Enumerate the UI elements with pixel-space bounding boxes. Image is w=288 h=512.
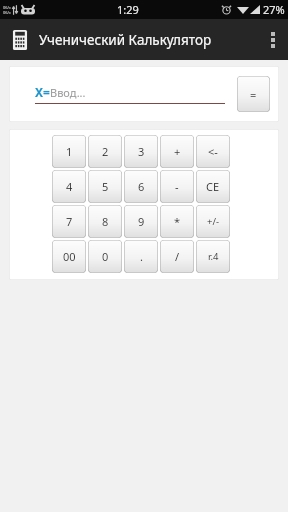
staticText: <- (208, 144, 218, 159)
staticText: - (175, 179, 179, 194)
staticText: 4 (66, 179, 73, 194)
button[interactable]: r.4 (196, 240, 230, 273)
button[interactable]: <- (196, 135, 230, 168)
staticText: / (175, 249, 180, 264)
button[interactable]: +/- (196, 205, 230, 238)
button[interactable]: More options (258, 19, 288, 60)
staticText: X= (35, 84, 50, 100)
button[interactable]: 9 (124, 205, 158, 238)
button[interactable]: 6 (124, 170, 158, 203)
staticText: CE (206, 179, 220, 194)
staticText: = (250, 87, 257, 102)
button[interactable]: CE (196, 170, 230, 203)
button[interactable]: 0 (88, 240, 122, 273)
staticText: . (140, 249, 143, 264)
button[interactable]: . (124, 240, 158, 273)
staticText: 1:29 (117, 2, 139, 17)
button[interactable]: / (160, 240, 194, 273)
button[interactable]: 2 (88, 135, 122, 168)
staticText: Ввод... (50, 85, 86, 100)
staticText: 8 (102, 214, 109, 229)
button[interactable]: + (160, 135, 194, 168)
button[interactable]: 7 (52, 205, 86, 238)
button[interactable]: 5 (88, 170, 122, 203)
staticText: 3 (138, 144, 145, 159)
button[interactable]: 3 (124, 135, 158, 168)
button[interactable]: * (160, 205, 194, 238)
button[interactable]: 00 (52, 240, 86, 273)
staticText: +/- (207, 215, 220, 228)
staticText: * (174, 214, 181, 229)
staticText: + (174, 144, 181, 159)
button[interactable]: 8 (88, 205, 122, 238)
staticText: 9 (138, 214, 145, 229)
staticText: 06/c (3, 5, 11, 10)
button[interactable]: - (160, 170, 194, 203)
staticText: 6 (138, 179, 145, 194)
button[interactable]: 4 (52, 170, 86, 203)
staticText: 0 (102, 249, 109, 264)
staticText: 06/c (3, 10, 11, 15)
staticText: Ученический Калькулятор (39, 31, 212, 49)
button[interactable]: X= (35, 84, 225, 104)
button[interactable]: = (237, 76, 270, 112)
staticText: 27% (263, 2, 285, 17)
staticText: 5 (102, 179, 109, 194)
staticText: r.4 (208, 250, 219, 263)
staticText: 00 (63, 249, 76, 264)
staticText: 2 (102, 144, 109, 159)
staticText: 1 (66, 144, 73, 159)
button[interactable]: 1 (52, 135, 86, 168)
staticText: 7 (66, 214, 73, 229)
